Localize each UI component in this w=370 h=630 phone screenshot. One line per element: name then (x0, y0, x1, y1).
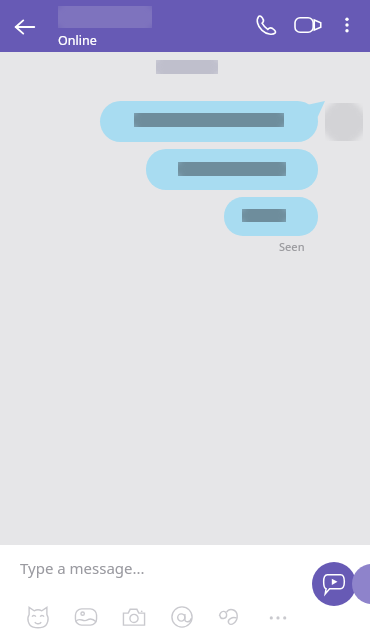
button[interactable] (224, 197, 318, 236)
button[interactable]: Camera (110, 593, 158, 630)
button[interactable]: Gallery (62, 593, 110, 630)
button[interactable]: Call (246, 5, 286, 45)
button[interactable]: Stickers (14, 593, 62, 630)
button[interactable]: Online (58, 6, 152, 49)
staticText: Seen (279, 239, 305, 254)
button[interactable]: Doodle (206, 593, 254, 630)
staticText: Online (58, 32, 97, 49)
button[interactable]: Mention (158, 593, 206, 630)
staticText: Type a message... (20, 558, 145, 578)
button[interactable]: More options (330, 8, 364, 42)
button[interactable]: More actions (352, 564, 370, 604)
button[interactable]: Video call (286, 3, 330, 47)
button[interactable]: Send voice message (312, 562, 356, 606)
button[interactable]: Back (8, 10, 42, 44)
button[interactable] (146, 149, 318, 190)
button[interactable] (100, 101, 318, 142)
button[interactable]: More (254, 593, 302, 630)
